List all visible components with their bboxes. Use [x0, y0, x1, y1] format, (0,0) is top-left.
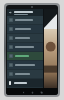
button[interactable]: Recents	[39, 90, 43, 94]
button[interactable]	[7, 52, 57, 60]
button[interactable]: Home	[30, 90, 34, 94]
button[interactable]	[7, 25, 57, 33]
button[interactable]	[7, 61, 57, 69]
button[interactable]	[7, 34, 57, 42]
button[interactable]: Back	[21, 90, 25, 94]
button[interactable]: Back	[7, 9, 57, 16]
button[interactable]	[7, 43, 57, 51]
other: Downloads	[9, 81, 11, 85]
button[interactable]	[7, 70, 57, 78]
other: Back	[9, 11, 12, 14]
button[interactable]	[7, 16, 57, 24]
button[interactable]: Downloads	[7, 79, 57, 87]
